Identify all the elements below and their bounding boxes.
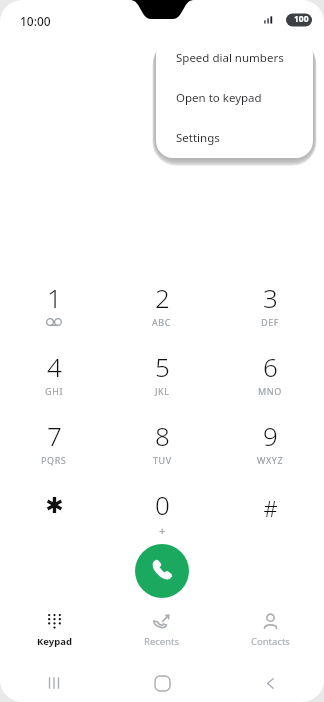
button[interactable]: 4 bbox=[0, 347, 108, 416]
button[interactable]: 9 bbox=[216, 416, 324, 485]
button[interactable]: 1 bbox=[0, 278, 108, 347]
button[interactable]: ✱ bbox=[0, 485, 108, 554]
button[interactable]: 5 bbox=[108, 347, 216, 416]
button[interactable]: Contacts bbox=[216, 608, 324, 656]
button[interactable]: # bbox=[216, 485, 324, 554]
staticText: PQRS bbox=[41, 454, 67, 466]
staticText: 4 bbox=[47, 349, 62, 384]
staticText: Open to keypad bbox=[176, 90, 262, 106]
staticText: Recents bbox=[144, 635, 180, 648]
staticText: 5 bbox=[155, 349, 170, 384]
button[interactable]: Open to keypad bbox=[156, 78, 313, 118]
button[interactable]: Recents bbox=[108, 608, 216, 656]
staticText: 10:00 bbox=[20, 13, 51, 29]
staticText: 9 bbox=[263, 418, 278, 453]
staticText: 1 bbox=[47, 280, 62, 315]
staticText: # bbox=[263, 493, 278, 523]
button[interactable]: Home bbox=[108, 664, 216, 702]
button[interactable]: Settings bbox=[156, 118, 313, 158]
staticText: MNO bbox=[258, 385, 282, 397]
staticText: ABC bbox=[152, 316, 172, 328]
button[interactable]: Speed dial numbers bbox=[156, 38, 313, 78]
button[interactable]: Back bbox=[216, 664, 324, 702]
button[interactable]: Recent apps bbox=[0, 664, 108, 702]
staticText: GHI bbox=[45, 385, 64, 397]
staticText: 8 bbox=[155, 418, 170, 453]
button[interactable]: 6 bbox=[216, 347, 324, 416]
staticText: 0 bbox=[155, 487, 170, 522]
staticText: 7 bbox=[47, 418, 62, 453]
button[interactable]: Call bbox=[135, 544, 189, 598]
button[interactable]: Keypad bbox=[0, 608, 108, 656]
staticText: 2 bbox=[155, 280, 170, 315]
staticText: Speed dial numbers bbox=[176, 50, 284, 66]
button[interactable]: 7 bbox=[0, 416, 108, 485]
button[interactable]: 2 bbox=[108, 278, 216, 347]
staticText: Keypad bbox=[37, 635, 72, 648]
button[interactable]: 0 bbox=[108, 485, 216, 554]
staticText: WXYZ bbox=[257, 454, 284, 466]
staticText: JKL bbox=[155, 385, 170, 397]
staticText: 100 bbox=[294, 13, 309, 25]
staticText: 3 bbox=[263, 280, 278, 315]
staticText: Settings bbox=[176, 130, 220, 146]
staticText: 6 bbox=[263, 349, 278, 384]
staticText: + bbox=[159, 523, 166, 538]
staticText: TUV bbox=[153, 454, 172, 466]
button[interactable]: 3 bbox=[216, 278, 324, 347]
staticText: ✱ bbox=[45, 493, 64, 519]
staticText: DEF bbox=[261, 316, 280, 328]
button[interactable]: 8 bbox=[108, 416, 216, 485]
staticText: Contacts bbox=[251, 635, 290, 648]
